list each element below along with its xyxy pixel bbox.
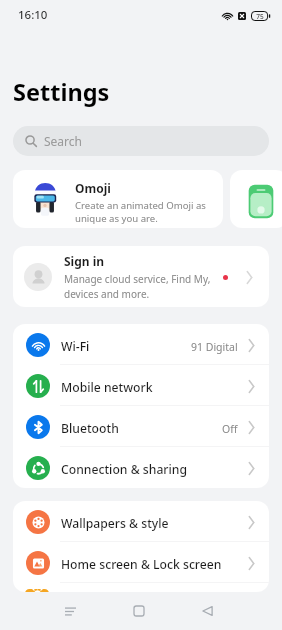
staticText: Home screen & Lock screen [61, 556, 248, 573]
staticText: 16:10 [18, 7, 48, 23]
button[interactable]: Connection & sharing [13, 447, 269, 488]
staticText: Sign in [64, 253, 105, 269]
staticText: Wi-Fi [61, 338, 191, 355]
button[interactable]: Device [230, 170, 282, 228]
staticText: Wallpapers & style [61, 515, 248, 532]
staticText: unique as you are. [75, 212, 158, 225]
staticText: Connection & sharing [61, 461, 248, 478]
button[interactable]: Sign in [13, 246, 269, 307]
button[interactable]: Display & brightness [13, 583, 269, 592]
staticText: Settings [13, 76, 110, 108]
button[interactable]: Home screen & Lock screen [13, 542, 269, 583]
staticText: devices and more. [64, 287, 150, 301]
button[interactable]: Home [121, 593, 157, 629]
staticText: Create an animated Omoji as [75, 199, 206, 212]
staticText: Bluetooth [61, 420, 222, 437]
button[interactable]: Wallpapers & style [13, 501, 269, 542]
staticText: Search [44, 133, 82, 149]
button[interactable]: Recent apps [52, 593, 88, 629]
staticText: 91 Digital [191, 340, 238, 354]
button[interactable]: Search [13, 126, 269, 156]
button[interactable]: Mobile network [13, 365, 269, 406]
staticText: Manage cloud service, Find My, [64, 272, 211, 286]
button[interactable]: Wi-Fi [13, 324, 269, 365]
staticText: Omoji [75, 180, 111, 196]
staticText: Mobile network [61, 379, 248, 396]
button[interactable]: Back [189, 593, 225, 629]
button[interactable]: Bluetooth [13, 406, 269, 447]
staticText: 75 [256, 12, 264, 21]
staticText: Off [222, 422, 238, 436]
button[interactable]: Omoji [13, 170, 223, 228]
